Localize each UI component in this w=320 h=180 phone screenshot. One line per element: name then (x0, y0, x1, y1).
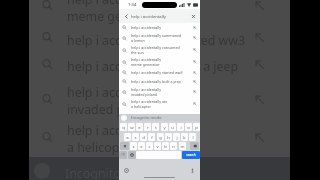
staticText: w (130, 124, 134, 130)
staticText: help i accidentally started ww3 (67, 32, 246, 49)
button[interactable]: q (120, 123, 127, 131)
staticText: p (195, 124, 198, 130)
button[interactable]: g (157, 133, 164, 141)
staticText: help i accidentally (131, 87, 162, 92)
staticText: help i accidentally (131, 25, 162, 30)
button[interactable]: u (169, 123, 176, 131)
button[interactable]: e (136, 123, 143, 131)
button[interactable]: help i accidentally consumed (119, 44, 200, 56)
button[interactable]: a (124, 133, 131, 141)
staticText: v (156, 143, 159, 149)
button[interactable]: k (181, 133, 188, 141)
button[interactable]: Backspace (190, 142, 199, 150)
staticText: help i accidentally consumed (131, 45, 180, 50)
button[interactable]: h (165, 133, 172, 141)
button[interactable]: v (154, 142, 161, 150)
button[interactable]: Emoji (128, 151, 136, 159)
button[interactable]: help i accidentally (119, 56, 200, 68)
staticText: j (176, 134, 178, 140)
staticText: a helicopter (131, 104, 151, 109)
staticText: help i accidentally (67, 84, 171, 101)
staticText: Incognito mode (65, 165, 158, 180)
staticText: help i accidentally ate (131, 99, 168, 104)
button[interactable]: d (140, 133, 147, 141)
staticText: a helicopter (67, 139, 136, 156)
staticText: help i accidentally ate (67, 122, 193, 139)
button[interactable]: l (189, 133, 196, 141)
button[interactable]: x (138, 142, 145, 150)
staticText: help i accidentally started ww3 (131, 70, 183, 75)
staticText: k (183, 134, 186, 140)
staticText: g (159, 134, 162, 140)
button[interactable]: t (152, 123, 159, 131)
button[interactable]: o (185, 123, 192, 131)
button[interactable]: y (161, 123, 168, 131)
staticText: b (164, 143, 167, 149)
staticText: n (172, 143, 175, 149)
staticText: h (167, 134, 170, 140)
staticText: meme generator (131, 62, 160, 67)
button[interactable]: m (179, 142, 186, 150)
button[interactable]: Incognito mode (119, 114, 200, 122)
staticText: help i accidentally (67, 0, 171, 8)
staticText: ?1! (121, 153, 125, 157)
staticText: s (134, 134, 137, 140)
staticText: help i accidentally summoned (131, 33, 182, 38)
staticText: a (126, 134, 129, 140)
button[interactable]: f (148, 133, 155, 141)
staticText: q (122, 124, 125, 130)
staticText: c (148, 143, 151, 149)
staticText: u (171, 124, 174, 130)
other: Clear query (191, 14, 196, 19)
button[interactable]: help i accidentally (119, 23, 200, 32)
staticText: x (140, 143, 143, 149)
staticText: 1:34 (128, 2, 137, 8)
staticText: m (180, 143, 185, 149)
button[interactable]: Shift (120, 142, 129, 150)
staticText: invaded poland (131, 92, 158, 97)
staticText: z (132, 143, 135, 149)
button[interactable]: help i accidentally ate (119, 98, 200, 110)
staticText: help i accidentally (131, 57, 162, 62)
button[interactable]: j (173, 133, 180, 141)
staticText: l (192, 134, 194, 140)
staticText: o (187, 124, 190, 130)
button[interactable]: i (177, 123, 184, 131)
button[interactable]: help i accidentally (119, 86, 200, 98)
button[interactable]: help i accidentally started ww3 (119, 68, 200, 77)
staticText: the sun (131, 50, 144, 55)
staticText: help i accidentally built a jeep (131, 79, 181, 84)
button[interactable]: p (193, 123, 200, 131)
staticText: i (180, 124, 182, 130)
staticText: help i accidentally (131, 14, 166, 20)
button[interactable]: s (132, 133, 139, 141)
staticText: r (147, 124, 149, 130)
button[interactable]: search (182, 151, 200, 159)
button[interactable]: help i accidentally summoned (119, 32, 200, 44)
button[interactable]: c (146, 142, 153, 150)
button[interactable]: n (170, 142, 177, 150)
other: Voice input (190, 168, 195, 173)
button[interactable]: help i accidentally built a jeep (119, 77, 200, 86)
other: Back (124, 14, 129, 19)
staticText: meme generator (67, 8, 166, 25)
staticText: t (155, 124, 157, 130)
staticText: invaded poland (67, 101, 158, 118)
staticText: e (138, 124, 141, 130)
button[interactable]: r (144, 123, 151, 131)
other: Keyboard settings (124, 168, 129, 173)
button[interactable]: ?1! (119, 151, 127, 159)
button[interactable]: w (128, 123, 135, 131)
staticText: search (186, 153, 196, 157)
button[interactable]: Back (119, 9, 200, 23)
staticText: help i accidentally built a jeep (67, 58, 239, 75)
button[interactable]: b (162, 142, 169, 150)
staticText: f (151, 134, 153, 140)
staticText: d (142, 134, 145, 140)
button[interactable]: z (130, 142, 137, 150)
staticText: y (163, 124, 166, 130)
staticText: Incognito mode (131, 115, 162, 121)
staticText: a lemon (131, 38, 145, 43)
